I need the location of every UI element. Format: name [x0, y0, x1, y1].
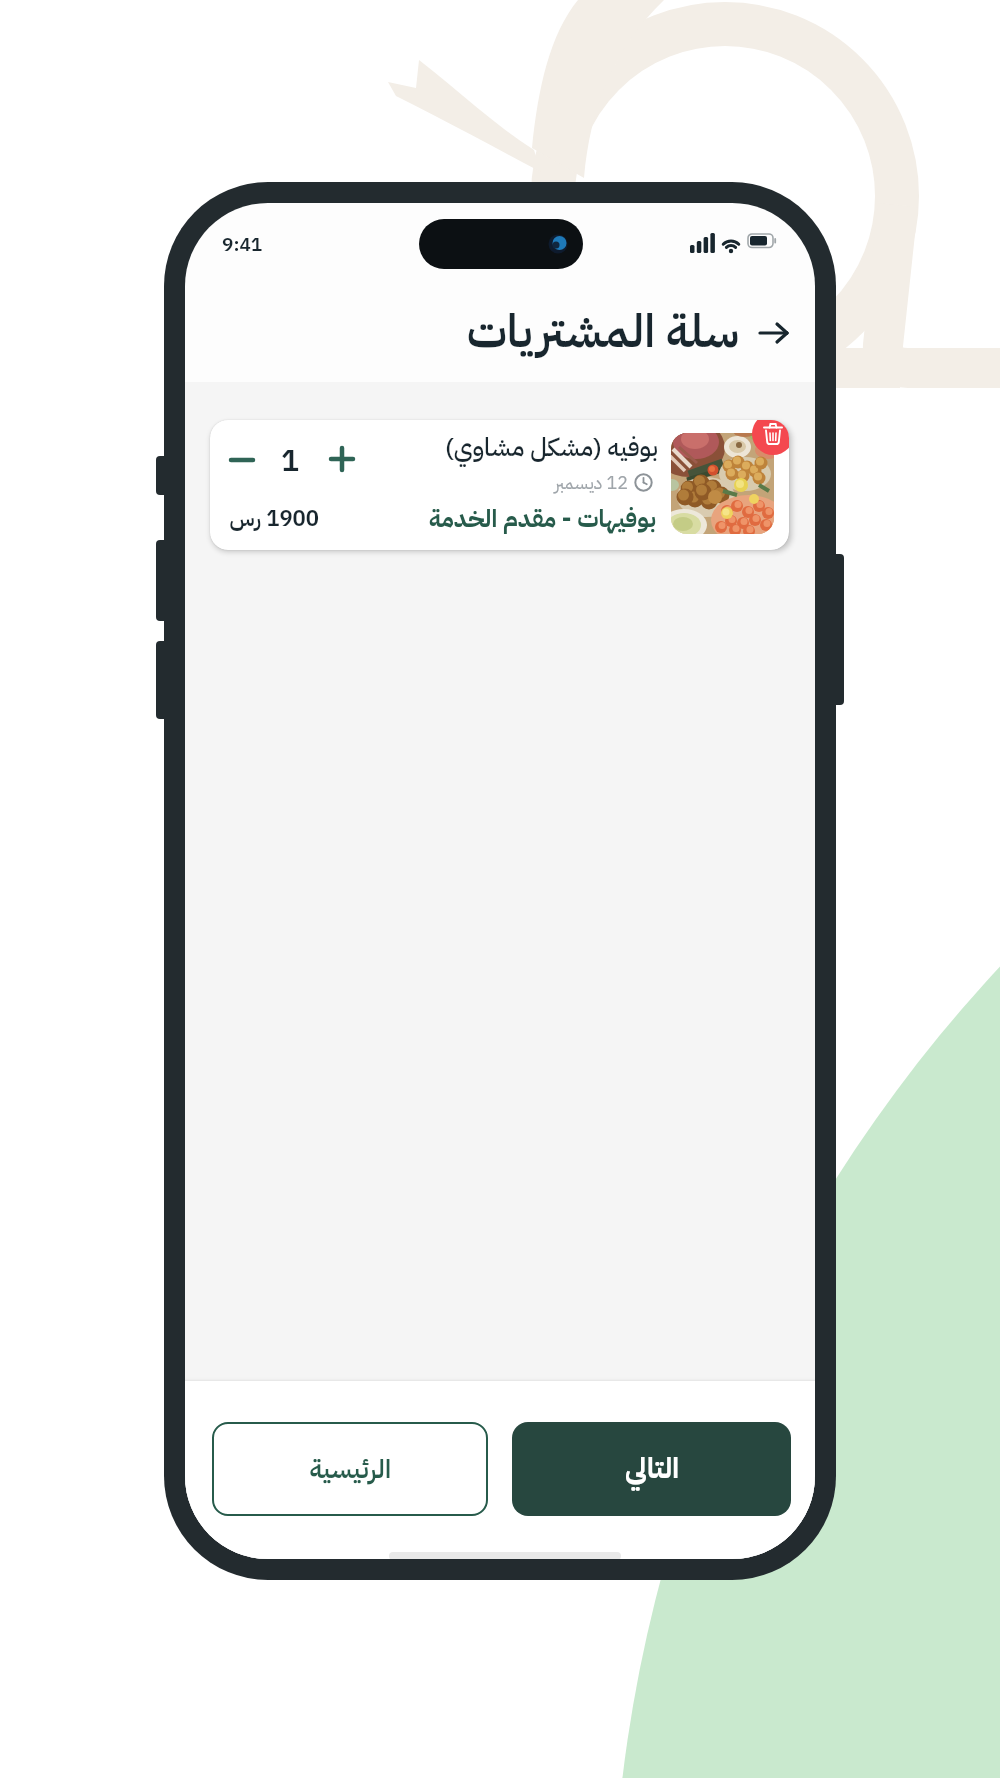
- staticText: بوفيه (مشكل مشاوي): [445, 429, 658, 467]
- staticText: سلة المشتريات: [466, 297, 739, 365]
- staticText: 1: [281, 438, 299, 482]
- button[interactable]: الرئيسية: [212, 1422, 488, 1516]
- button[interactable]: [224, 442, 260, 478]
- staticText: 1900 رس: [229, 502, 319, 535]
- staticText: 12 ديسمبر: [554, 469, 628, 496]
- button[interactable]: التالي: [512, 1422, 791, 1516]
- staticText: الرئيسية: [309, 1450, 391, 1489]
- staticText: 9:41: [222, 230, 263, 259]
- staticText: بوفيهات - مقدم الخدمة: [428, 501, 656, 537]
- staticText: التالي: [625, 1448, 679, 1490]
- button[interactable]: بوفيه (مشكل مشاوي): [210, 420, 789, 550]
- button[interactable]: [752, 420, 789, 455]
- button[interactable]: [755, 313, 795, 353]
- button[interactable]: [324, 441, 360, 477]
